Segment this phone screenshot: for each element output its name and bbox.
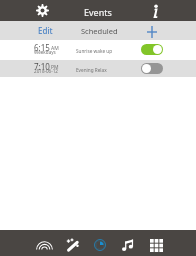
button[interactable]: Info [144,0,164,21]
button[interactable]: Timer [86,230,114,256]
button[interactable]: 6:15 [0,40,196,60]
staticText: PM [51,64,59,71]
staticText: Sunrise wake up [76,48,113,54]
button[interactable]: Ambience [30,230,58,256]
button[interactable]: Edit [38,21,53,40]
staticText: 6:15 [34,42,50,53]
button[interactable]: Add event [144,21,160,40]
staticText: Weekdays [34,49,56,55]
button[interactable]: Apps [142,230,170,256]
staticText: Scheduled [81,26,118,36]
staticText: 7:10 [34,61,50,72]
staticText: Events [84,6,112,18]
button[interactable]: Settings [30,0,54,21]
button[interactable]: Music [114,230,142,256]
button[interactable]: Scheduled [81,21,118,40]
button[interactable]: Toggle alarm [141,44,163,55]
button[interactable]: Toggle alarm [141,63,163,74]
staticText: 2018-06-12 [34,68,58,74]
button[interactable]: Magic [58,230,86,256]
button[interactable]: 7:10 [0,60,196,77]
staticText: AM [51,45,59,52]
staticText: Evening Relax [76,67,107,73]
staticText: Edit [38,25,53,36]
